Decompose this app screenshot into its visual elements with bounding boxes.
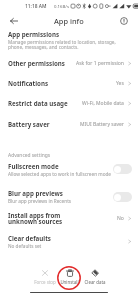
staticText: Install apps from unknown sources xyxy=(8,211,63,226)
staticText: Fullscreen mode xyxy=(8,162,59,170)
button[interactable]: Other permissions xyxy=(0,56,138,70)
button[interactable]: Battery saver xyxy=(0,117,138,131)
staticText: Blur app previews in Recents xyxy=(8,198,72,204)
staticText: App info xyxy=(54,16,84,26)
staticText: Wi-Fi, Mobile data xyxy=(82,100,124,107)
staticText: Force stop xyxy=(34,279,56,285)
button[interactable]: Install apps from unknown sources xyxy=(0,210,138,227)
staticText: Clear data xyxy=(84,279,106,285)
button[interactable]: Fullscreen mode xyxy=(0,158,138,180)
button[interactable]: Clear data xyxy=(82,269,107,285)
button[interactable]: Clear defaults xyxy=(0,233,138,250)
staticText: MIUI Battery saver xyxy=(80,121,124,128)
button[interactable]: Notifications xyxy=(0,76,138,90)
staticText: App permissions xyxy=(8,30,60,38)
staticText: Other permissions xyxy=(8,59,65,67)
staticText: Allow selected apps to work in fullscree… xyxy=(8,171,112,177)
staticText: 11:18 AM xyxy=(25,3,47,10)
staticText: Ask for 1 permission xyxy=(76,60,124,67)
button[interactable]: Uninstall xyxy=(57,269,82,285)
staticText: Blur app previews xyxy=(8,189,63,197)
staticText: Manage permissions related to location, … xyxy=(8,39,132,50)
staticText: Notifications xyxy=(8,79,49,87)
button[interactable]: Back xyxy=(6,13,22,29)
staticText: Battery saver xyxy=(8,120,50,128)
button[interactable]: Toggle xyxy=(113,192,132,202)
staticText: Uninstall xyxy=(60,279,79,285)
staticText: No xyxy=(117,215,124,222)
staticText: Restrict data usage xyxy=(8,99,68,107)
staticText: Clear defaults xyxy=(8,234,51,242)
staticText: Advanced settings xyxy=(8,152,51,159)
staticText: Yes xyxy=(116,80,124,87)
button[interactable]: Blur app previews xyxy=(0,188,138,205)
staticText: No defaults set xyxy=(8,243,42,249)
button[interactable]: Toggle xyxy=(113,164,132,174)
staticText: 0.16B/s xyxy=(54,3,69,9)
button[interactable]: Help xyxy=(116,13,132,29)
button[interactable]: Force stop xyxy=(32,269,57,285)
button[interactable]: App permissions xyxy=(0,30,138,50)
button[interactable]: Restrict data usage xyxy=(0,96,138,110)
